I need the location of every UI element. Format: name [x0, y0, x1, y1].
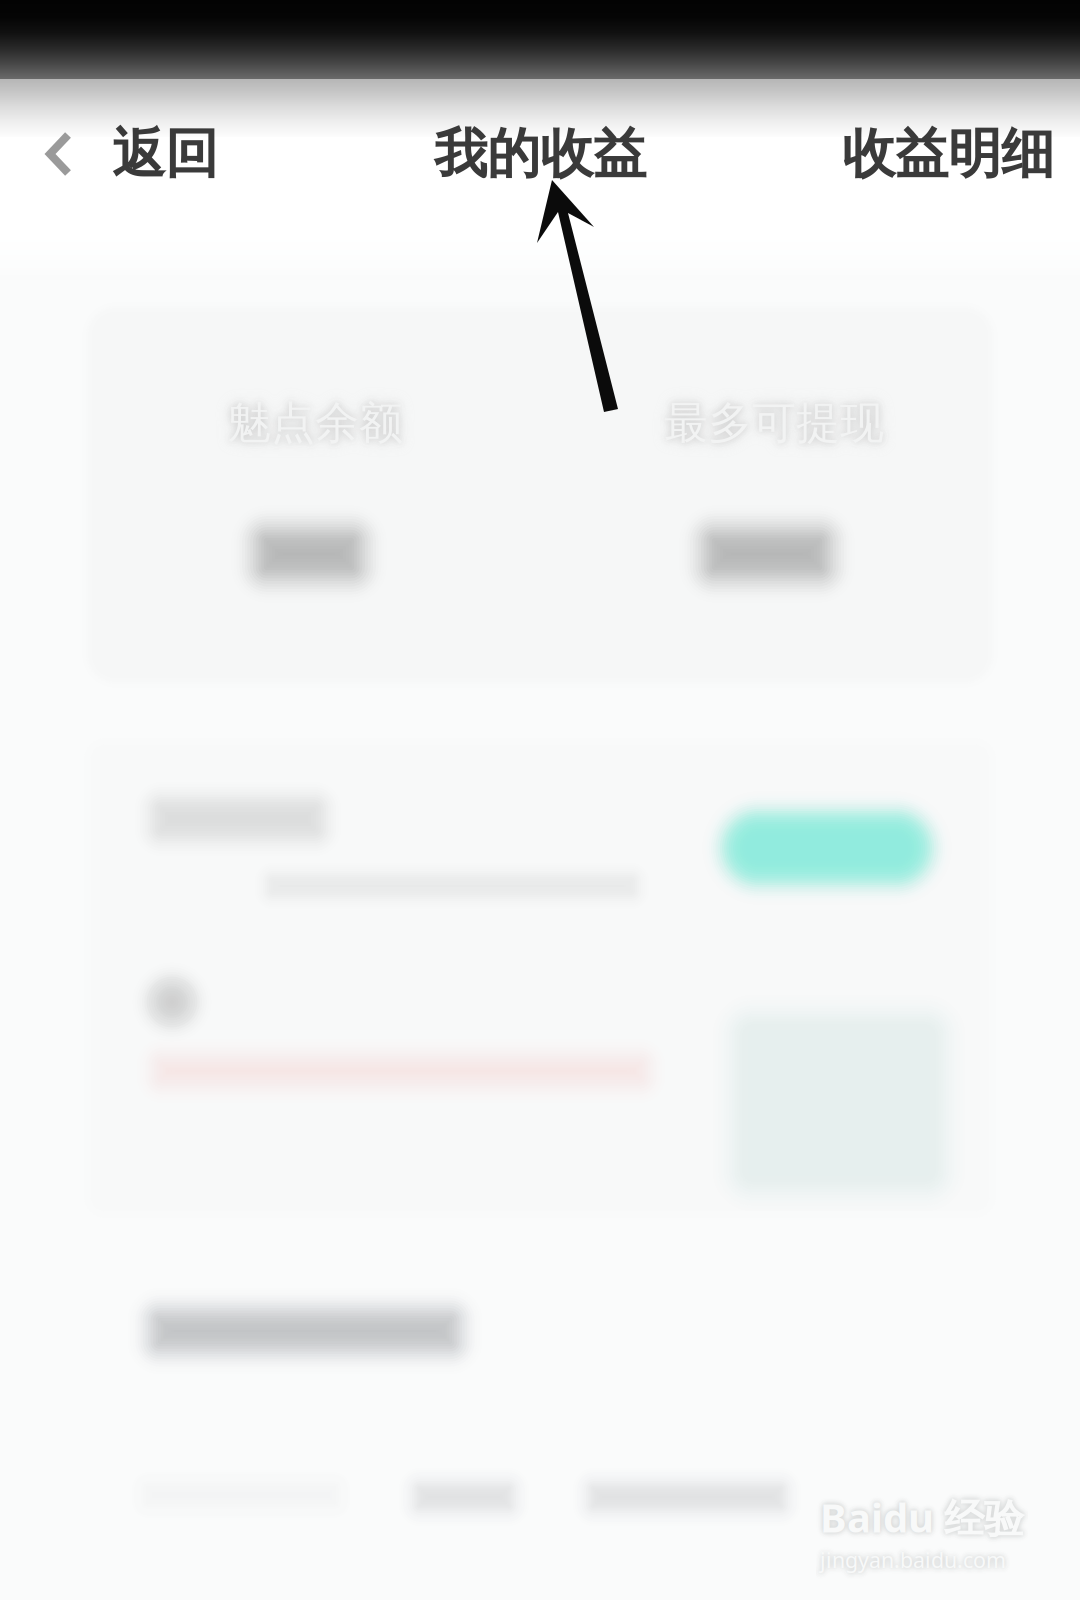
- staticText: 我的收益: [434, 121, 646, 187]
- staticText: 收益明细: [842, 121, 1054, 187]
- staticText: 最多可提现: [664, 396, 884, 450]
- button[interactable]: 返回: [0, 116, 282, 192]
- staticText: Baidu 经验: [820, 1490, 1024, 1544]
- button[interactable]: 收益明细: [798, 116, 1080, 192]
- staticText: jingyan.baidu.com: [820, 1546, 1006, 1574]
- staticText: 返回: [112, 121, 218, 187]
- staticText: 魅点余额: [227, 396, 403, 450]
